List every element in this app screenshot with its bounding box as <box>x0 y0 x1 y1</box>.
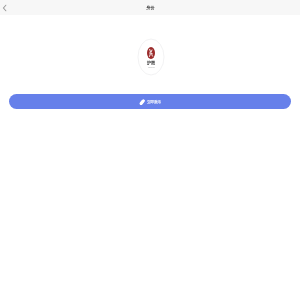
button[interactable]: 立即激活 <box>9 94 291 109</box>
button[interactable]: Back <box>0 4 8 12</box>
staticText: 身份 <box>146 5 155 10</box>
button[interactable]: Passport card <box>138 39 164 75</box>
staticText: 立即激活 <box>147 100 161 104</box>
staticText: 护照 <box>147 60 155 65</box>
staticText: CHINA <box>148 66 155 69</box>
